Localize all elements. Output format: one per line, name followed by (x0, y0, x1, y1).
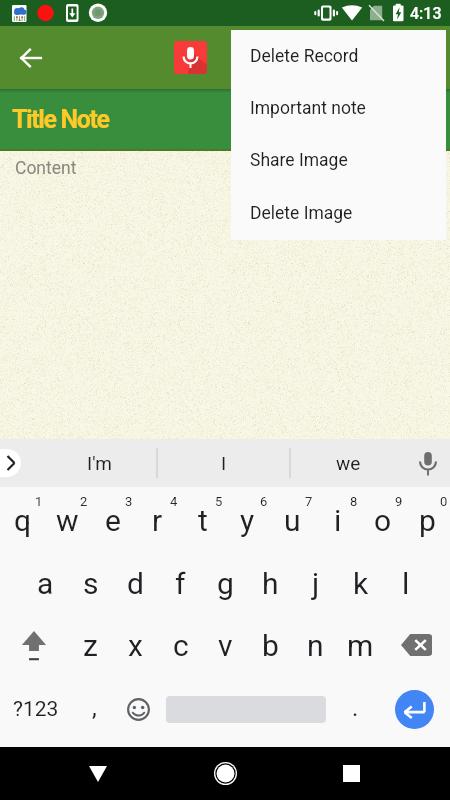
button[interactable]: Backspace (383, 614, 450, 676)
button[interactable]: c (158, 614, 203, 676)
button[interactable]: Record voice (174, 41, 207, 74)
staticText: a (37, 566, 54, 601)
button[interactable]: m (338, 614, 383, 676)
staticText: w (56, 503, 79, 538)
button[interactable]: o (360, 487, 405, 552)
button[interactable]: Share Image (231, 134, 446, 187)
staticText: . (352, 694, 359, 722)
button[interactable]: x (113, 614, 158, 676)
staticText: g (217, 566, 234, 601)
staticText: f (175, 566, 186, 601)
staticText: 7 (305, 494, 313, 509)
button[interactable]: Shift (0, 614, 67, 676)
button[interactable]: a (23, 552, 68, 614)
button[interactable]: u (270, 487, 315, 552)
staticText: 0 (440, 494, 448, 509)
staticText: 4:13 (410, 4, 442, 23)
staticText: I (221, 452, 227, 474)
button[interactable]: s (68, 552, 113, 614)
staticText: 3 (125, 494, 133, 509)
button[interactable]: . (333, 676, 378, 747)
staticText: 5 (215, 494, 223, 509)
staticText: n (307, 628, 324, 663)
button[interactable]: q (0, 487, 45, 552)
button[interactable]: we (308, 439, 388, 487)
staticText: Title Note (12, 105, 109, 134)
button[interactable]: k (338, 552, 383, 614)
staticText: Delete Record (250, 46, 359, 67)
staticText: I'm (87, 452, 112, 474)
button[interactable]: I (184, 439, 264, 487)
staticText: z (83, 628, 98, 663)
button[interactable]: n (293, 614, 338, 676)
button[interactable]: t (180, 487, 225, 552)
staticText: p (419, 503, 436, 538)
staticText: j (312, 566, 320, 601)
button[interactable]: i (315, 487, 360, 552)
button[interactable]: j (293, 552, 338, 614)
button[interactable]: z (67, 614, 113, 676)
staticText: v (218, 628, 233, 663)
button[interactable]: , (72, 676, 117, 747)
staticText: 4 (170, 494, 178, 509)
button[interactable]: h (248, 552, 293, 614)
staticText: Content (15, 158, 77, 179)
staticText: r (152, 503, 163, 538)
staticText: s (83, 566, 99, 601)
staticText: 9 (395, 494, 403, 509)
button[interactable]: e (90, 487, 135, 552)
button[interactable]: I'm (59, 439, 139, 487)
button[interactable]: ?123 (0, 676, 72, 747)
staticText: 6 (260, 494, 268, 509)
staticText: Delete Image (250, 203, 353, 224)
staticText: e (105, 503, 121, 538)
staticText: c (173, 628, 189, 663)
button[interactable]: w (45, 487, 90, 552)
button[interactable]: d (113, 552, 158, 614)
staticText: x (128, 628, 143, 663)
staticText: Important note (250, 98, 366, 119)
button[interactable]: Enter (395, 690, 434, 729)
staticText: d (127, 566, 144, 601)
button[interactable]: Back (73, 747, 123, 800)
staticText: o (374, 503, 392, 538)
staticText: t (198, 503, 208, 538)
staticText: k (353, 566, 369, 601)
button[interactable]: y (225, 487, 270, 552)
button[interactable]: Home (200, 747, 250, 800)
staticText: i (334, 503, 342, 538)
staticText: y (240, 503, 255, 538)
button[interactable]: r (135, 487, 180, 552)
staticText: 2 (80, 494, 88, 509)
button[interactable]: g (203, 552, 248, 614)
staticText: u (284, 503, 301, 538)
staticText: b (262, 628, 279, 663)
button[interactable]: b (248, 614, 293, 676)
staticText: Share Image (250, 150, 348, 171)
staticText: we (336, 452, 361, 474)
staticText: l (402, 566, 410, 601)
button[interactable]: Delete Image (231, 187, 446, 240)
button[interactable]: Recents (326, 747, 376, 800)
button[interactable]: Important note (231, 82, 446, 134)
staticText: q (14, 503, 32, 538)
button[interactable]: Emoji (117, 676, 159, 747)
staticText: , (92, 694, 97, 722)
button[interactable]: l (383, 552, 428, 614)
staticText: 1 (35, 494, 43, 509)
button[interactable]: v (203, 614, 248, 676)
button[interactable]: p (405, 487, 450, 552)
staticText: ?123 (13, 697, 59, 722)
staticText: 8 (350, 494, 358, 509)
staticText: h (262, 566, 279, 601)
button[interactable]: Delete Record (231, 30, 446, 82)
button[interactable]: Expand suggestions (0, 449, 21, 477)
button[interactable]: f (158, 552, 203, 614)
button[interactable]: Back (10, 37, 52, 79)
staticText: m (347, 628, 374, 663)
